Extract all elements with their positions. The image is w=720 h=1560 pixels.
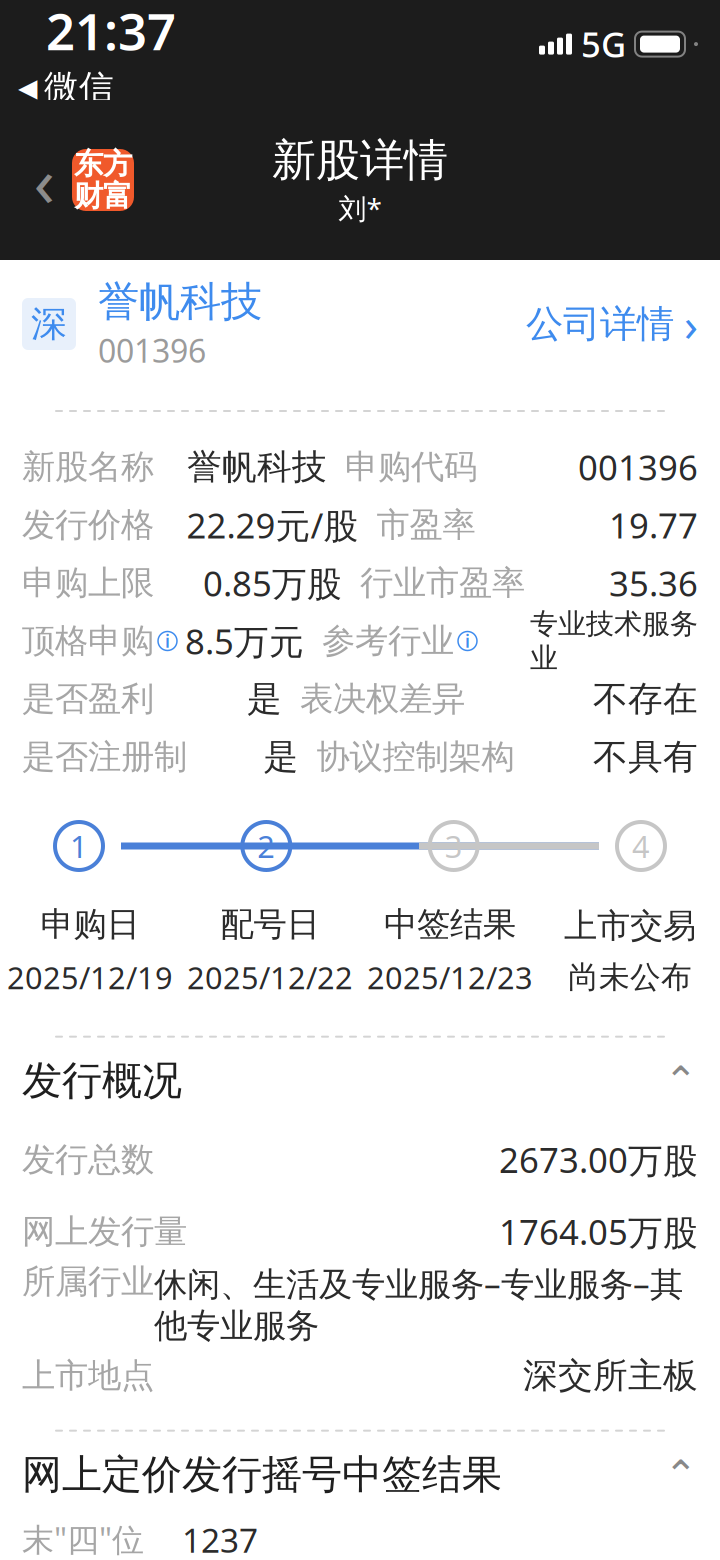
staticText: 公司详情 [526,301,674,347]
staticText: 001396 [98,329,206,372]
staticText: 申购代码 [345,446,477,487]
staticText: 3 [445,826,463,866]
staticText: 2025/12/22 [187,957,353,998]
staticText: 不存在 [593,678,698,720]
button[interactable]: ◀ [0,66,114,109]
staticText: 新股名称 [22,446,154,487]
staticText: 发行概况 [22,1056,182,1105]
staticText: 微信 [44,66,114,109]
staticText: ⌃ [664,1058,698,1103]
staticText: 21:37 [46,0,176,64]
staticText: ⌃ [664,1452,698,1497]
staticText: ‹ [33,134,54,226]
staticText: 35.36 [609,560,698,606]
staticText: 发行总数 [22,1139,154,1180]
staticText: 尚未公布 [568,958,692,996]
staticText: 2 [257,826,275,866]
staticText: 行业市盈率 [360,562,525,603]
staticText: 是否盈利 [22,678,154,719]
staticText: 誉帆科技 [98,276,262,327]
staticText: 不具有 [593,736,698,778]
staticText: 申购上限 [22,562,154,603]
staticText: 东方 [74,146,132,182]
staticText: 休闲、生活及专业服务–专业服务–其他专业服务 [154,1261,683,1346]
staticText: 顶格申购 [22,620,154,661]
staticText: i [165,629,170,652]
staticText: 2025/12/19 [7,957,173,998]
staticText: 网上定价发行摇号中签结果 [22,1450,502,1499]
staticText: 上市交易 [564,905,696,946]
staticText: 所属行业 [22,1261,154,1302]
staticText: 发行价格 [22,504,154,545]
staticText: ◀ [18,73,37,102]
staticText: 19.77 [609,502,698,548]
staticText: 4 [632,826,650,866]
staticText: 5G [581,21,626,67]
staticText: 配号日 [220,904,319,945]
staticText: 表决权差异 [300,678,465,719]
staticText: 誉帆科技 [187,446,327,488]
staticText: 8.5万元 [185,618,304,664]
staticText: 协议控制架构 [316,736,514,777]
staticText: 1 [70,826,88,866]
staticText: 2673.00万股 [499,1137,698,1183]
staticText: 深交所主板 [523,1354,698,1397]
staticText: 专业技术服务业 [530,607,698,675]
staticText: 市盈率 [376,504,475,545]
staticText: 财富 [74,178,132,214]
staticText: 上市地点 [22,1355,154,1396]
staticText: 1237 [182,1518,258,1560]
staticText: 新股详情 [272,133,448,187]
staticText: 网上发行量 [22,1211,187,1252]
button[interactable]: 发行概况 [22,1038,698,1124]
staticText: 参考行业 [322,620,454,661]
staticText: 是 [263,736,298,778]
staticText: 末"四"位数: [22,1518,144,1560]
button[interactable]: 公司详情 [526,284,698,364]
staticText: i [465,629,470,652]
staticText: 中签结果 [384,904,516,945]
staticText: 是 [247,678,282,720]
staticText: 0.85万股 [203,560,342,606]
button[interactable]: 网上定价发行摇号中签结果 [22,1432,698,1518]
staticText: 001396 [578,444,698,490]
staticText: 是否注册制 [22,736,187,777]
staticText: 深 [31,302,67,346]
staticText: 22.29元/股 [186,502,358,548]
button[interactable]: 返回 [16,149,72,211]
staticText: 申购日 [40,904,139,945]
staticText: 1764.05万股 [499,1209,698,1255]
staticText: › [684,294,698,354]
staticText: 2025/12/23 [367,957,533,998]
staticText: 刘* [338,189,381,227]
